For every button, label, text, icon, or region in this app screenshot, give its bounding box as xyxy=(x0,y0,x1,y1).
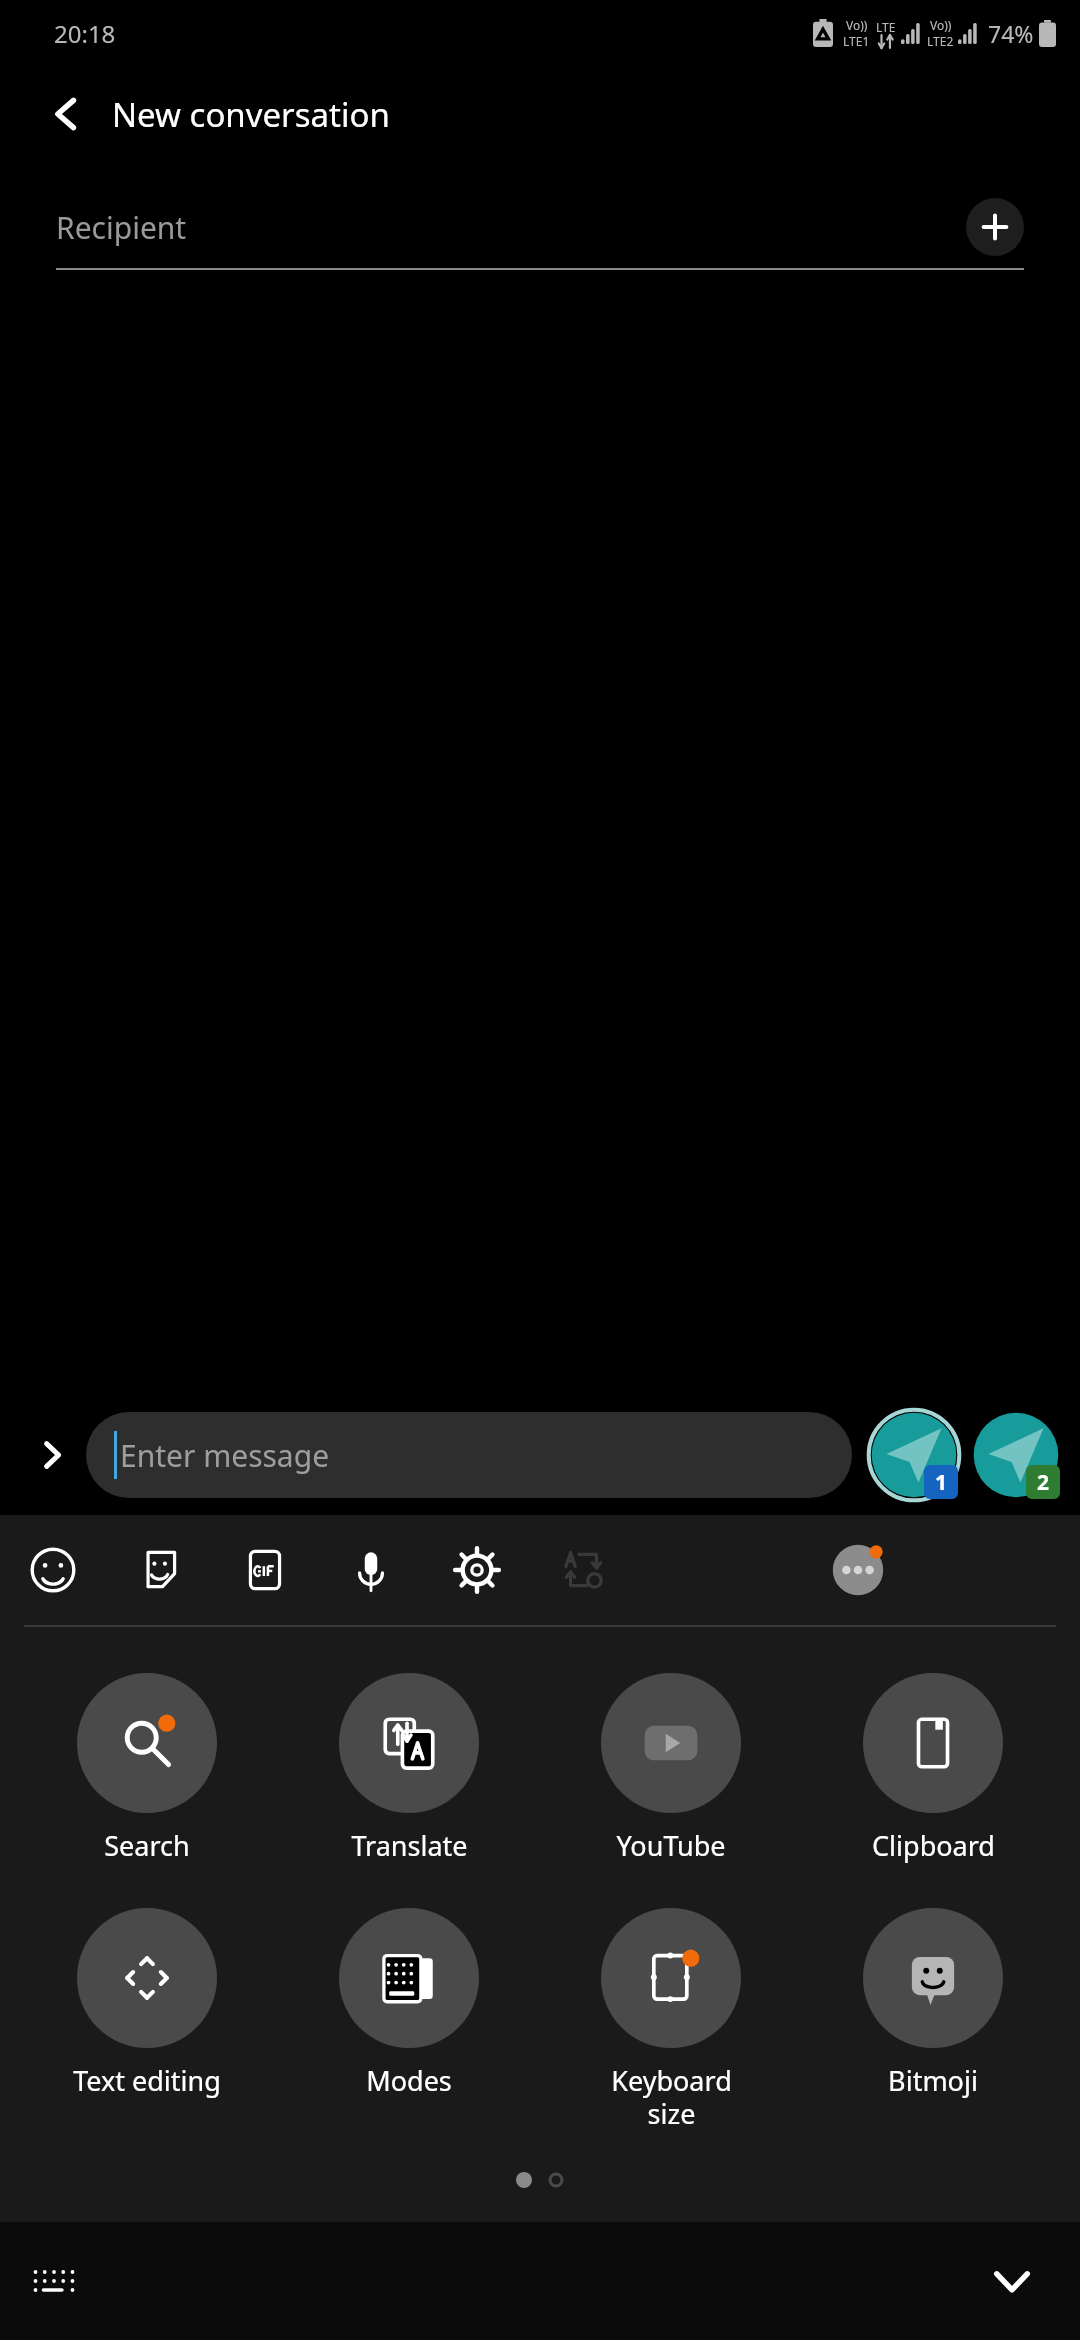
button[interactable]: Keyboard size xyxy=(540,1908,802,2132)
staticText: Vo)) xyxy=(846,17,868,33)
staticText: Search xyxy=(104,1827,190,1864)
button[interactable]: Emoji xyxy=(0,1515,106,1625)
button[interactable]: Translate xyxy=(278,1673,540,1864)
button[interactable]: Text editing xyxy=(16,1908,278,2099)
button[interactable]: Clipboard xyxy=(802,1673,1064,1864)
button[interactable]: More options xyxy=(636,1515,1080,1625)
staticText: Vo)) xyxy=(930,17,952,33)
button[interactable]: Hide keyboard xyxy=(974,2243,1050,2319)
staticText: Recipient xyxy=(56,207,966,248)
staticText: Enter message xyxy=(120,1435,330,1476)
staticText: Keyboard size xyxy=(611,2062,732,2132)
button[interactable]: Enter message xyxy=(86,1412,852,1498)
staticText: 20:18 xyxy=(54,17,116,50)
button[interactable]: Search xyxy=(16,1673,278,1864)
staticText: LTE2 xyxy=(927,33,954,49)
button[interactable]: Stickers xyxy=(106,1515,212,1625)
staticText: Modes xyxy=(366,2062,452,2099)
staticText: 2 xyxy=(1037,1468,1050,1497)
staticText: 1 xyxy=(935,1468,948,1497)
staticText: New conversation xyxy=(112,92,390,137)
staticText: LTE1 xyxy=(843,33,870,49)
staticText: Bitmoji xyxy=(888,2062,978,2099)
button[interactable]: Send with SIM 2 xyxy=(970,1409,1062,1501)
button[interactable]: Back xyxy=(34,82,98,146)
button[interactable]: Voice input xyxy=(318,1515,424,1625)
button[interactable]: Bitmoji xyxy=(802,1908,1064,2099)
button[interactable]: Send with SIM 1 xyxy=(868,1409,960,1501)
staticText: Translate xyxy=(351,1827,468,1864)
button[interactable]: Modes xyxy=(278,1908,540,2099)
button[interactable]: GIF xyxy=(212,1515,318,1625)
button[interactable]: Translate xyxy=(530,1515,636,1625)
staticText: Text editing xyxy=(73,2062,221,2099)
button[interactable]: Add recipient xyxy=(966,198,1024,256)
button[interactable]: Expand options xyxy=(24,1427,80,1483)
staticText: YouTube xyxy=(616,1827,726,1864)
staticText: Clipboard xyxy=(872,1827,995,1864)
button[interactable]: Keyboard settings xyxy=(424,1515,530,1625)
button[interactable]: Show keyboard xyxy=(18,2245,90,2317)
staticText: LTE xyxy=(876,19,896,35)
staticText: 74% xyxy=(988,18,1034,49)
button[interactable]: YouTube xyxy=(540,1673,802,1864)
